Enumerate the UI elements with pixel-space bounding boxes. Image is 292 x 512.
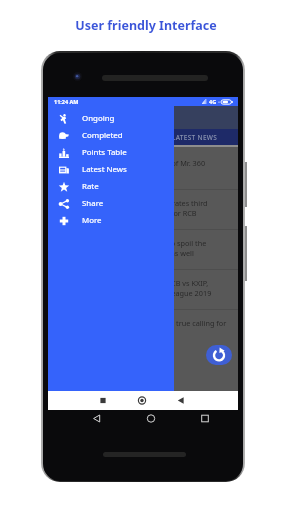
staticText: LATEST NEWS xyxy=(172,133,218,142)
button[interactable]: Rahul Chahar has finally found the true … xyxy=(48,310,238,354)
staticText: Ongoing xyxy=(82,113,115,124)
button[interactable]: Latest News xyxy=(48,161,174,178)
staticText: Completed xyxy=(82,130,123,141)
staticText: AB de Villiers picks up the mantle of Mr… xyxy=(56,158,206,168)
staticText: party of the Chennai Super Kings as well xyxy=(56,248,194,258)
staticText: Share xyxy=(82,198,104,209)
button[interactable]: LATEST NEWS xyxy=(152,129,238,145)
staticText: Points Table xyxy=(82,147,127,158)
button[interactable]: Mumbai Indians' skipper Bumrah rates thi… xyxy=(48,190,238,230)
staticText: User friendly Interface xyxy=(75,17,217,34)
button[interactable]: Rate xyxy=(48,178,174,195)
button[interactable]: Refresh xyxy=(206,345,232,365)
button[interactable]: More xyxy=(48,212,174,229)
staticText: Rate xyxy=(82,181,99,192)
staticText: 4G xyxy=(209,98,217,105)
staticText: More xyxy=(82,215,102,226)
staticText: Rahul Chahar has finally found the true … xyxy=(56,318,227,328)
staticText: Match preview with predictions: RCB vs K… xyxy=(56,278,209,288)
staticText: Mumbai Indians' skipper Bumrah rates thi… xyxy=(56,198,208,208)
button[interactable]: Match preview with predictions: RCB vs K… xyxy=(48,270,238,310)
button[interactable]: Share xyxy=(48,195,174,212)
button[interactable]: AB de Villiers picks up the mantle of Mr… xyxy=(48,150,238,190)
staticText: Match 42 of Vivo Indian Premier League 2… xyxy=(56,288,212,298)
button[interactable]: Completed xyxy=(48,127,174,144)
button[interactable]: Delhi Capitals are all set and out to sp… xyxy=(48,230,238,270)
button[interactable]: Points Table xyxy=(48,144,174,161)
staticText: Latest News xyxy=(82,164,127,175)
staticText: 11:24 AM xyxy=(54,98,79,105)
button[interactable]: Ongoing xyxy=(48,110,174,127)
staticText: Delhi Capitals are all set and out to sp… xyxy=(56,238,207,248)
staticText: over in the super over as his best for R… xyxy=(56,208,197,218)
